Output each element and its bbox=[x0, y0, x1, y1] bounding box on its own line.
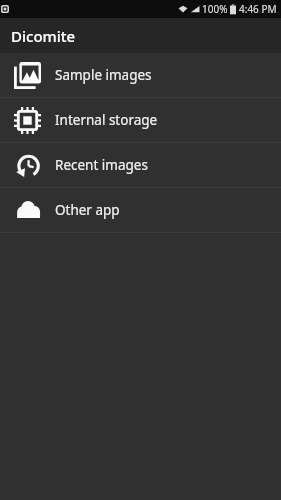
staticText: Internal storage bbox=[55, 111, 158, 129]
staticText: 100% bbox=[202, 2, 228, 16]
staticText: Dicomite bbox=[11, 26, 76, 46]
button[interactable]: Sample images bbox=[0, 53, 281, 97]
button[interactable]: Recent images bbox=[0, 143, 281, 187]
staticText: Other app bbox=[55, 201, 120, 219]
button[interactable]: Other app bbox=[0, 188, 281, 232]
button[interactable]: Internal storage bbox=[0, 98, 281, 142]
staticText: 4:46 PM bbox=[239, 2, 277, 16]
staticText: Recent images bbox=[55, 156, 148, 174]
staticText: Sample images bbox=[55, 66, 152, 84]
